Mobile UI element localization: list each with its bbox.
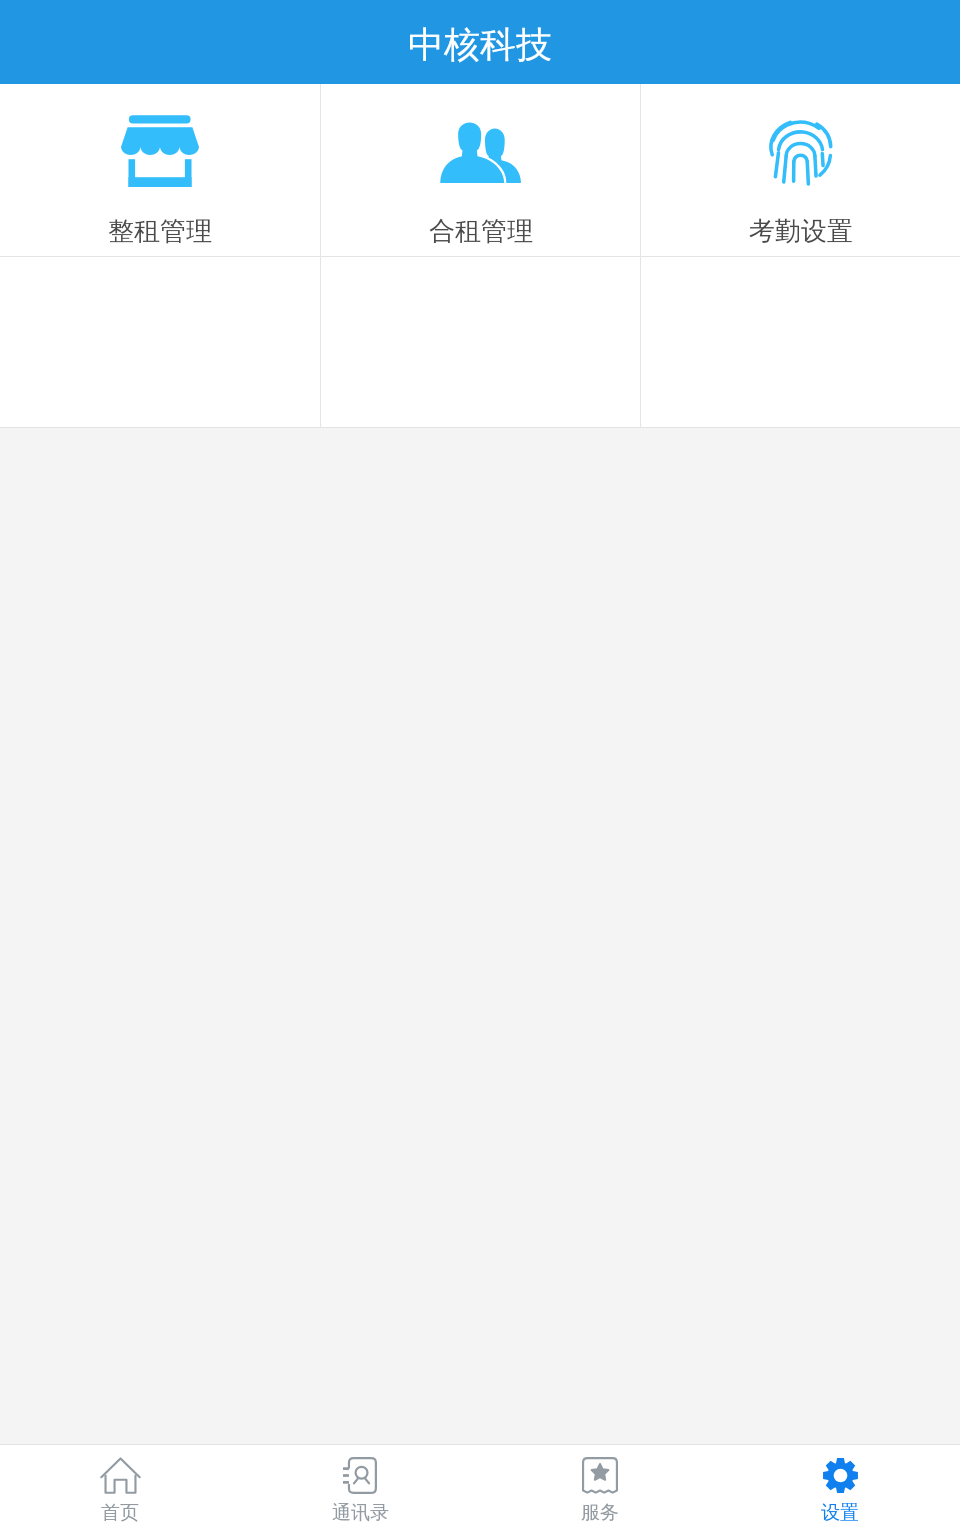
button[interactable]: Home <box>0 1445 240 1536</box>
staticText: 中核科技 <box>408 22 552 67</box>
staticText: 首页 <box>101 1501 139 1525</box>
button[interactable]: 整租管理 <box>0 84 320 256</box>
button[interactable]: 考勤设置 <box>641 84 960 256</box>
staticText: 通讯录 <box>332 1501 389 1525</box>
staticText: 服务 <box>581 1501 619 1525</box>
other: Service <box>582 1457 618 1494</box>
other: Home <box>100 1457 141 1494</box>
staticText: 整租管理 <box>108 215 212 248</box>
other: Settings <box>822 1457 859 1494</box>
other: Contacts <box>343 1457 377 1494</box>
button[interactable]: Contacts <box>240 1445 480 1536</box>
button[interactable]: 合租管理 <box>321 84 640 256</box>
button[interactable]: Settings <box>720 1445 960 1536</box>
button[interactable]: Service <box>480 1445 720 1536</box>
staticText: 设置 <box>821 1501 859 1525</box>
staticText: 考勤设置 <box>749 215 853 248</box>
staticText: 合租管理 <box>429 215 533 248</box>
